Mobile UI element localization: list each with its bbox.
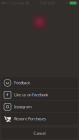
button[interactable]: Cancel bbox=[1, 128, 78, 139]
staticText: f bbox=[6, 92, 8, 97]
staticText: Like us on Facebook bbox=[14, 92, 48, 97]
button[interactable]: Instagram bbox=[1, 101, 78, 113]
staticText: Instagram bbox=[14, 104, 32, 109]
button[interactable]: f bbox=[1, 89, 78, 101]
staticText: Restore Purchases bbox=[14, 116, 46, 121]
staticText: Feedback bbox=[14, 80, 30, 85]
staticText: Cancel bbox=[33, 131, 45, 136]
staticText: Carrier bbox=[11, 0, 25, 6]
staticText: 9:41 AM bbox=[40, 0, 55, 6]
button[interactable]: Restore Purchases bbox=[1, 113, 78, 125]
button[interactable]: Feedback bbox=[1, 77, 78, 89]
